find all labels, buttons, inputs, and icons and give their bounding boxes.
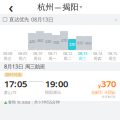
- staticText: 萧山T3: [4, 90, 16, 95]
- staticText: —: [54, 3, 61, 11]
- staticText: ‹: [8, 0, 13, 17]
- staticText: 已减15: [92, 91, 102, 94]
- button[interactable]: 430: [44, 33, 52, 50]
- staticText: 400: [85, 40, 91, 46]
- staticText: 周五: [3, 56, 11, 61]
- staticText: ¥: [98, 83, 101, 90]
- staticText: 08-14: [93, 51, 102, 56]
- staticText: 周一: [48, 56, 56, 61]
- button[interactable]: 370: [68, 39, 76, 50]
- staticText: 经济舱3折: [102, 95, 116, 98]
- staticText: |: [31, 99, 33, 105]
- staticText: ￥20起: [105, 91, 115, 94]
- staticText: 08-12: [63, 51, 72, 56]
- staticText: 08-10: [33, 51, 42, 56]
- staticText: 370: [69, 42, 75, 47]
- staticText: 限时特惠: [5, 72, 21, 77]
- staticText: 08-09: [18, 51, 27, 56]
- staticText: 390: [53, 40, 59, 45]
- staticText: 08-11: [48, 51, 57, 56]
- staticText: 周二: [63, 56, 71, 61]
- button[interactable]: 460: [36, 31, 44, 50]
- staticText: 揭阳: [62, 2, 78, 12]
- staticText: 370: [101, 77, 116, 90]
- staticText: 共1小时55分钟: [34, 99, 60, 105]
- staticText: 08-08: [3, 51, 12, 56]
- button[interactable]: 470: [60, 31, 68, 50]
- staticText: 8月13日 周三航班: [4, 63, 45, 70]
- staticText: ›: [42, 79, 43, 84]
- button[interactable]: 390: [52, 35, 60, 50]
- staticText: 420: [29, 39, 35, 44]
- staticText: 460: [37, 38, 43, 43]
- staticText: 08月13日: [31, 16, 53, 23]
- staticText: 周三: [78, 56, 86, 61]
- staticText: 08-13: [78, 51, 87, 56]
- button[interactable]: 400: [84, 36, 92, 50]
- staticText: 直达优先: [9, 16, 29, 23]
- staticText: 春秋 9C8304: [8, 99, 30, 105]
- button[interactable]: 410: [76, 36, 84, 50]
- staticText: 410: [77, 40, 83, 46]
- staticText: 杭州: [37, 2, 53, 12]
- button[interactable]: 限时特惠: [0, 71, 120, 101]
- staticText: 周日: [33, 56, 41, 61]
- staticText: 周六: [18, 56, 26, 61]
- staticText: 470: [61, 38, 67, 43]
- staticText: ›: [115, 15, 117, 24]
- staticText: 17:05: [4, 77, 27, 90]
- staticText: ▲: [4, 100, 7, 104]
- button[interactable]: 返回: [3, 0, 19, 14]
- staticText: 08-15: [108, 51, 117, 56]
- button[interactable]: 直达优先: [0, 14, 120, 25]
- button[interactable]: 420: [28, 33, 36, 50]
- staticText: 周五: [108, 56, 116, 61]
- button[interactable]: 杭州: [37, 2, 82, 12]
- staticText: 周四: [93, 56, 101, 61]
- staticText: 430: [45, 39, 51, 44]
- staticText: 揭阳潮汕: [45, 90, 61, 95]
- staticText: 19:00: [45, 77, 68, 90]
- staticText: ▾: [79, 4, 82, 10]
